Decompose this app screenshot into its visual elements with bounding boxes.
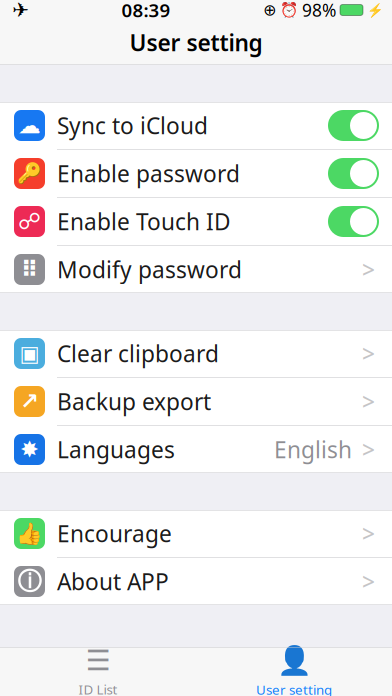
staticText: Enable password — [57, 158, 240, 188]
staticText: > — [362, 386, 375, 416]
staticText: ☁ — [18, 113, 41, 138]
staticText: ✈ — [12, 0, 29, 21]
staticText: ✸ — [20, 437, 39, 462]
staticText: Enable Touch ID — [57, 206, 231, 236]
staticText: Backup export — [57, 386, 211, 416]
staticText: User setting — [129, 27, 262, 57]
staticText: 👤 — [276, 645, 311, 677]
staticText: 08:39 — [121, 0, 170, 22]
staticText: ⠿ — [20, 257, 38, 282]
button[interactable]: ☰ — [0, 647, 196, 695]
staticText: ☍ — [18, 209, 41, 234]
staticText: ⓘ — [17, 567, 41, 596]
button[interactable]: ✸ — [0, 426, 392, 473]
staticText: Sync to iCloud — [57, 110, 208, 140]
staticText: Encourage — [57, 518, 172, 548]
staticText: Modify password — [57, 254, 242, 284]
staticText: ID List — [78, 680, 117, 696]
staticText: 🔑 — [17, 162, 42, 185]
staticText: > — [362, 434, 375, 464]
button[interactable]: ☍ — [0, 198, 392, 245]
button[interactable]: 👍 — [0, 510, 392, 557]
button[interactable]: ⠿ — [0, 246, 392, 293]
staticText: ↗ — [20, 389, 39, 414]
button[interactable]: 👤 — [196, 647, 392, 695]
button[interactable]: ☁ — [0, 102, 392, 149]
staticText: ▣ — [19, 341, 39, 366]
staticText: ☰ — [85, 645, 110, 677]
staticText: About APP — [57, 566, 169, 596]
button[interactable]: 🔑 — [0, 150, 392, 197]
staticText: 👍 — [16, 521, 43, 546]
staticText: > — [362, 338, 375, 368]
button[interactable]: ↗ — [0, 378, 392, 425]
staticText: Languages — [57, 434, 175, 464]
button[interactable]: ⓘ — [0, 558, 392, 605]
staticText: ⏰ — [280, 2, 298, 18]
staticText: ⊕ — [263, 1, 276, 19]
staticText: > — [362, 254, 375, 284]
staticText: English — [274, 434, 352, 464]
staticText: ⚡ — [367, 2, 384, 18]
staticText: Clear clipboard — [57, 338, 219, 368]
staticText: User setting — [256, 681, 332, 696]
staticText: > — [362, 566, 375, 596]
button[interactable]: ▣ — [0, 330, 392, 377]
staticText: > — [362, 518, 375, 548]
staticText: 98% — [302, 0, 336, 21]
